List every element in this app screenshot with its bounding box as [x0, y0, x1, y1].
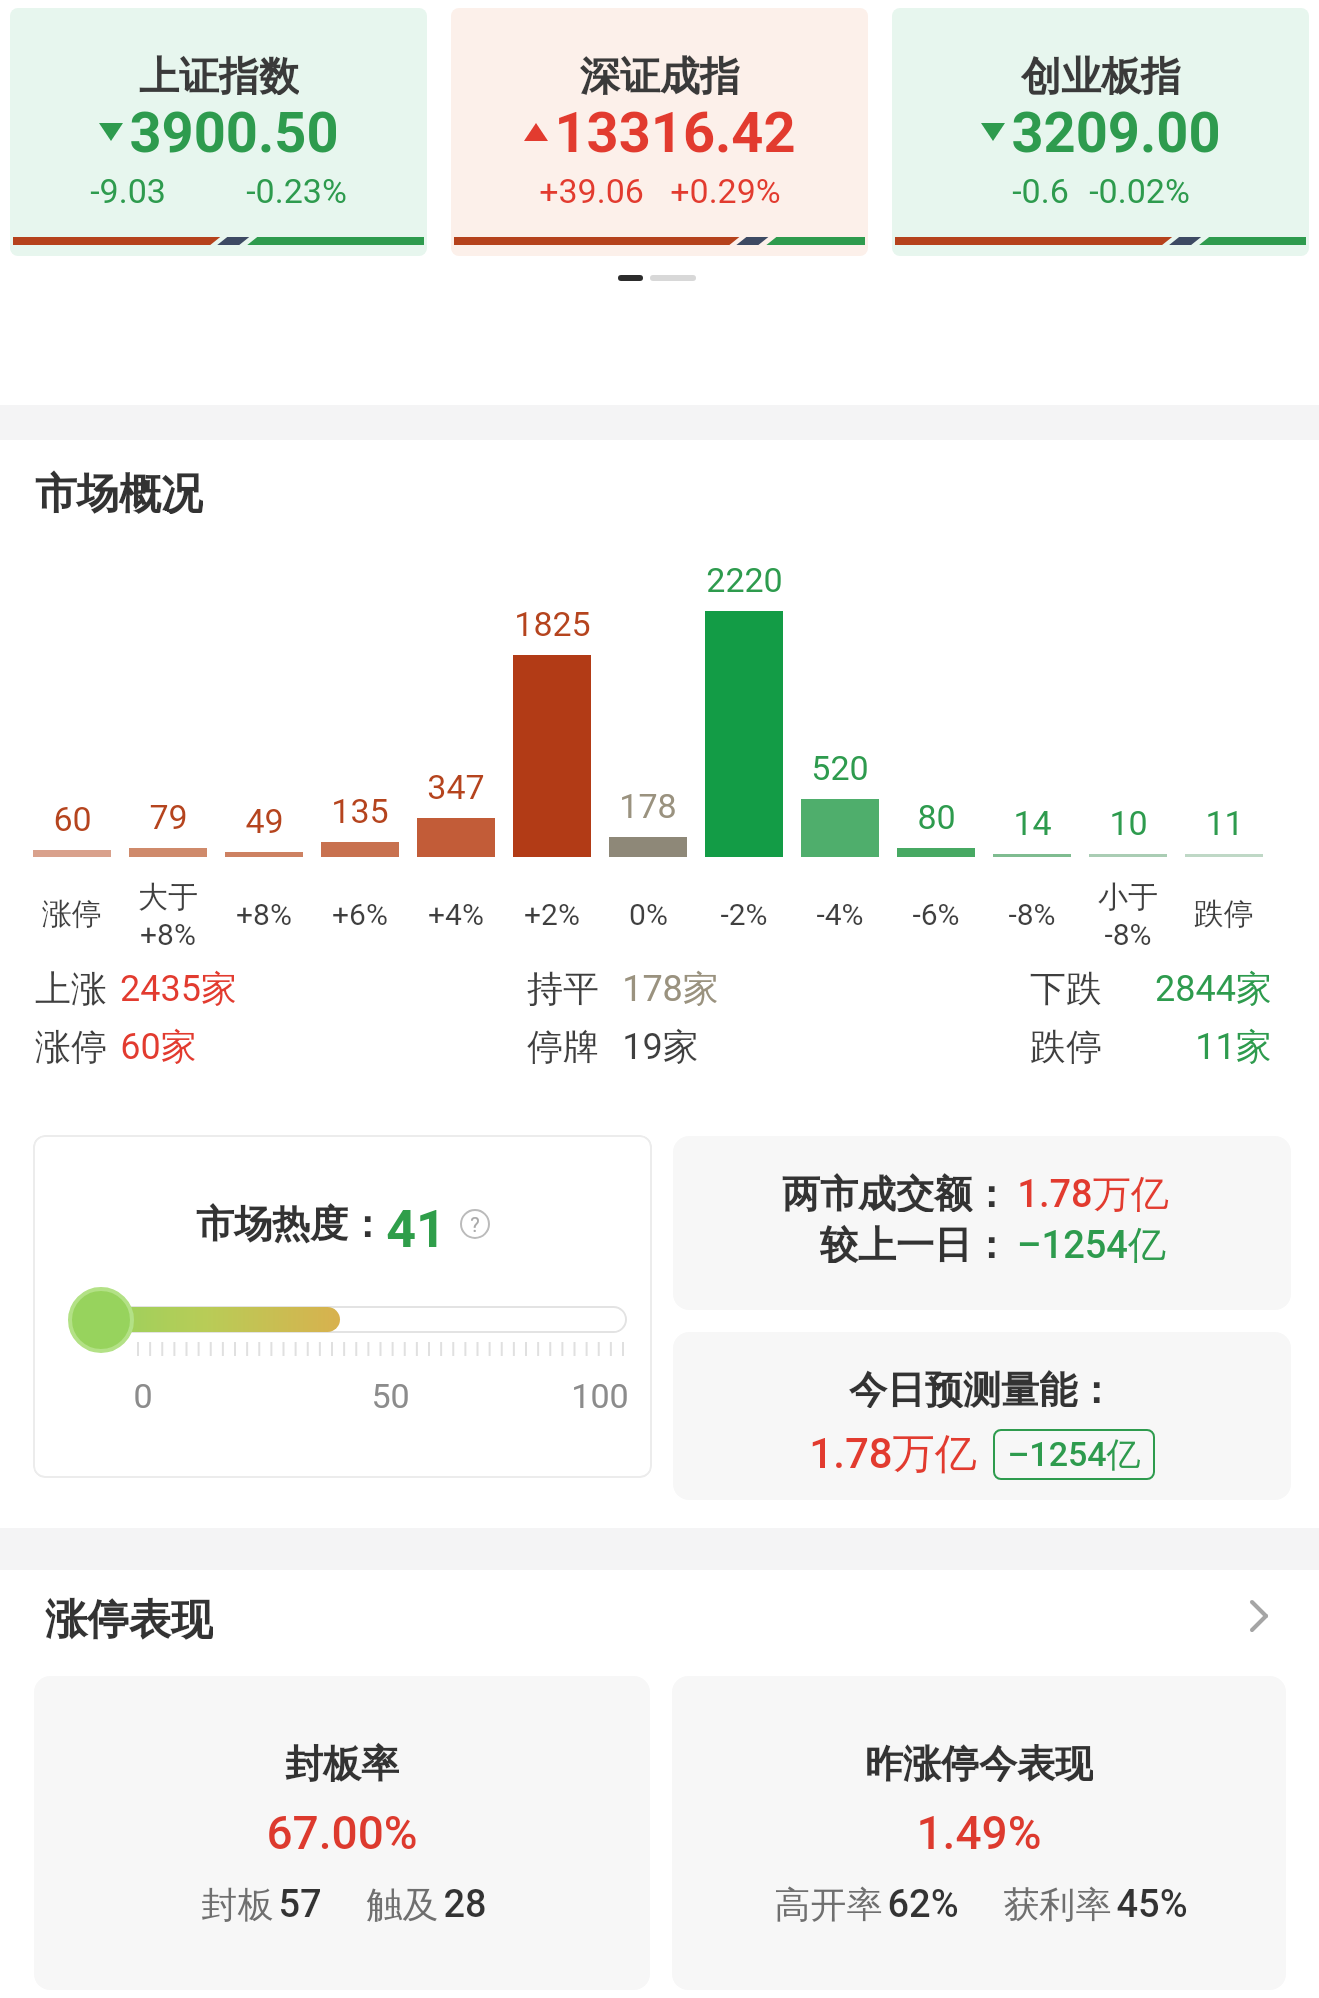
staticText: 封板 [197, 1882, 278, 1926]
staticText: 10 [1109, 803, 1148, 843]
button[interactable] [34, 1676, 650, 1990]
staticText: 市场概况 [35, 468, 203, 514]
button[interactable] [673, 1136, 1291, 1310]
staticText: 520 [811, 748, 869, 788]
staticText: 2220 [706, 560, 783, 600]
staticText: 停牌 [527, 1024, 599, 1064]
staticText: 上涨 [35, 966, 107, 1006]
staticText: 28 [443, 1882, 487, 1926]
staticText: 上证指数 [139, 51, 299, 95]
staticText: 涨停表现 [45, 1594, 213, 1640]
button[interactable]: 深证成指 [451, 8, 868, 256]
staticText: 持平 [527, 966, 599, 1006]
staticText: 市场热度： [196, 1200, 386, 1248]
staticText: 11 [1205, 803, 1244, 843]
staticText: 57 [278, 1882, 322, 1926]
staticText: 小于 -8% [1098, 878, 1158, 950]
button[interactable] [672, 1676, 1286, 1990]
staticText: 60 [53, 799, 92, 839]
staticText: 两市成交额： [782, 1170, 1010, 1212]
button[interactable]: 上证指数 [10, 8, 427, 256]
staticText: 跌停 [1030, 1024, 1102, 1064]
button[interactable] [673, 1332, 1291, 1500]
staticText: +0.29% [670, 171, 781, 211]
staticText: 跌停 [1194, 895, 1254, 933]
staticText: 50 [371, 1376, 410, 1416]
staticText: 封板率 [285, 1740, 399, 1782]
staticText: –1254亿 [1017, 1221, 1166, 1263]
staticText: +39.06 [539, 171, 644, 211]
staticText: 45% [1116, 1882, 1188, 1926]
staticText: 昨涨停今表现 [865, 1740, 1093, 1782]
staticText: 100 [571, 1376, 629, 1416]
staticText: 60家 [120, 1024, 197, 1064]
staticText: -0.02% [1089, 171, 1190, 211]
staticText: +4% [428, 897, 484, 932]
staticText: 2435家 [120, 966, 237, 1006]
staticText: 2844家 [1155, 966, 1272, 1006]
button[interactable] [1248, 1598, 1272, 1634]
staticText: 0% [629, 897, 668, 932]
staticText: 135 [331, 791, 389, 831]
staticText: +8% [236, 897, 292, 932]
staticText: 深证成指 [580, 51, 740, 95]
staticText: 19家 [622, 1024, 699, 1064]
staticText: 80 [917, 797, 956, 837]
staticText: 14 [1013, 803, 1052, 843]
staticText: 获利率 [999, 1882, 1116, 1926]
staticText: +2% [524, 897, 580, 932]
staticText: 1.78万亿 [809, 1428, 977, 1480]
staticText: 3209.00 [1011, 100, 1221, 164]
staticText: ? [470, 1213, 480, 1236]
staticText: 11家 [1195, 1024, 1272, 1064]
staticText: 触及 [362, 1882, 443, 1926]
button[interactable]: 市场热度： [33, 1135, 652, 1478]
staticText: 1.49% [916, 1806, 1042, 1858]
staticText: 大于 +8% [138, 878, 198, 950]
staticText: 创业板指 [1021, 51, 1181, 95]
staticText: 涨停 [42, 895, 102, 933]
staticText: 13316.42 [554, 100, 796, 164]
staticText: –1254亿 [1007, 1433, 1141, 1476]
staticText: 178家 [622, 966, 719, 1006]
staticText: -8% [1008, 897, 1056, 932]
staticText: -4% [816, 897, 864, 932]
staticText: -0.23% [246, 171, 347, 211]
staticText: 高开率 [770, 1882, 887, 1926]
staticText: -0.6 [1012, 171, 1069, 211]
staticText: +6% [332, 897, 388, 932]
staticText: -2% [720, 897, 768, 932]
staticText: 347 [427, 767, 485, 807]
staticText: 下跌 [1030, 966, 1102, 1006]
staticText: 67.00% [266, 1806, 418, 1858]
staticText: -9.03 [90, 171, 166, 211]
staticText: 178 [619, 786, 677, 826]
staticText: 62% [887, 1882, 959, 1926]
staticText: 49 [245, 801, 284, 841]
staticText: 涨停 [35, 1024, 107, 1064]
staticText: 较上一日： [820, 1221, 1010, 1263]
staticText: 1.78万亿 [1017, 1170, 1169, 1212]
button[interactable]: 创业板指 [892, 8, 1309, 256]
staticText: 3900.50 [129, 100, 339, 164]
staticText: 41 [386, 1199, 446, 1249]
staticText: 79 [149, 797, 188, 837]
staticText: 1825 [514, 604, 591, 644]
staticText: -6% [912, 897, 960, 932]
staticText: 今日预测量能： [849, 1366, 1115, 1408]
staticText: 0 [133, 1376, 153, 1416]
